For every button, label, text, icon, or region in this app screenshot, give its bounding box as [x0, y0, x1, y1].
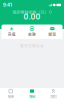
- staticText: 提现: [48, 31, 56, 37]
- button[interactable]: 收款: [22, 27, 42, 37]
- staticText: 0.00: [23, 13, 40, 21]
- staticText: 钱包: [29, 94, 35, 99]
- button[interactable]: 充值: [1, 27, 22, 37]
- staticText: 充值: [8, 31, 16, 37]
- staticText: 我的: [50, 94, 56, 99]
- staticText: 收款: [28, 31, 36, 37]
- staticText: 9:41: [3, 2, 12, 8]
- button[interactable]: 钱包: [21, 88, 43, 100]
- staticText: 账单: [8, 94, 14, 99]
- staticText: 我的零钱余额（元）: [12, 9, 48, 15]
- button[interactable]: 账单: [0, 88, 21, 100]
- button[interactable]: 我的: [43, 88, 64, 100]
- button[interactable]: 我的零钱余额（元）: [12, 9, 52, 15]
- staticText: 暂无交易记录: [20, 43, 44, 48]
- button[interactable]: 提现: [42, 27, 62, 37]
